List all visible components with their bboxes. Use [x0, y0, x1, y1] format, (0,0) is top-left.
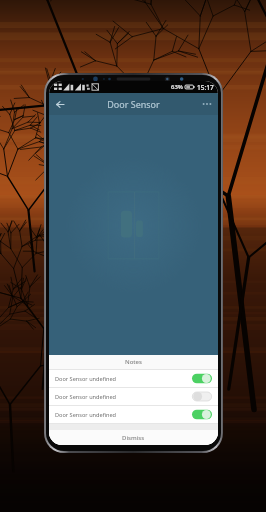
staticText: Dismiss [122, 434, 145, 442]
staticText: Door Sensor undefined [55, 411, 117, 419]
staticText: Door Sensor undefined [55, 375, 117, 383]
button[interactable]: Dismiss [49, 430, 218, 445]
button[interactable]: Door Sensor undefined [49, 388, 218, 405]
staticText: 63% [171, 83, 183, 91]
button[interactable]: Back [49, 93, 71, 115]
staticText: 15:17 [197, 83, 214, 92]
button[interactable]: Door Sensor undefined [49, 370, 218, 387]
staticText: Door Sensor undefined [55, 393, 117, 401]
button[interactable]: More options [196, 93, 218, 115]
button[interactable]: Door Sensor undefined [49, 406, 218, 423]
staticText: Door Sensor [107, 98, 160, 110]
staticText: Notes [125, 358, 142, 366]
